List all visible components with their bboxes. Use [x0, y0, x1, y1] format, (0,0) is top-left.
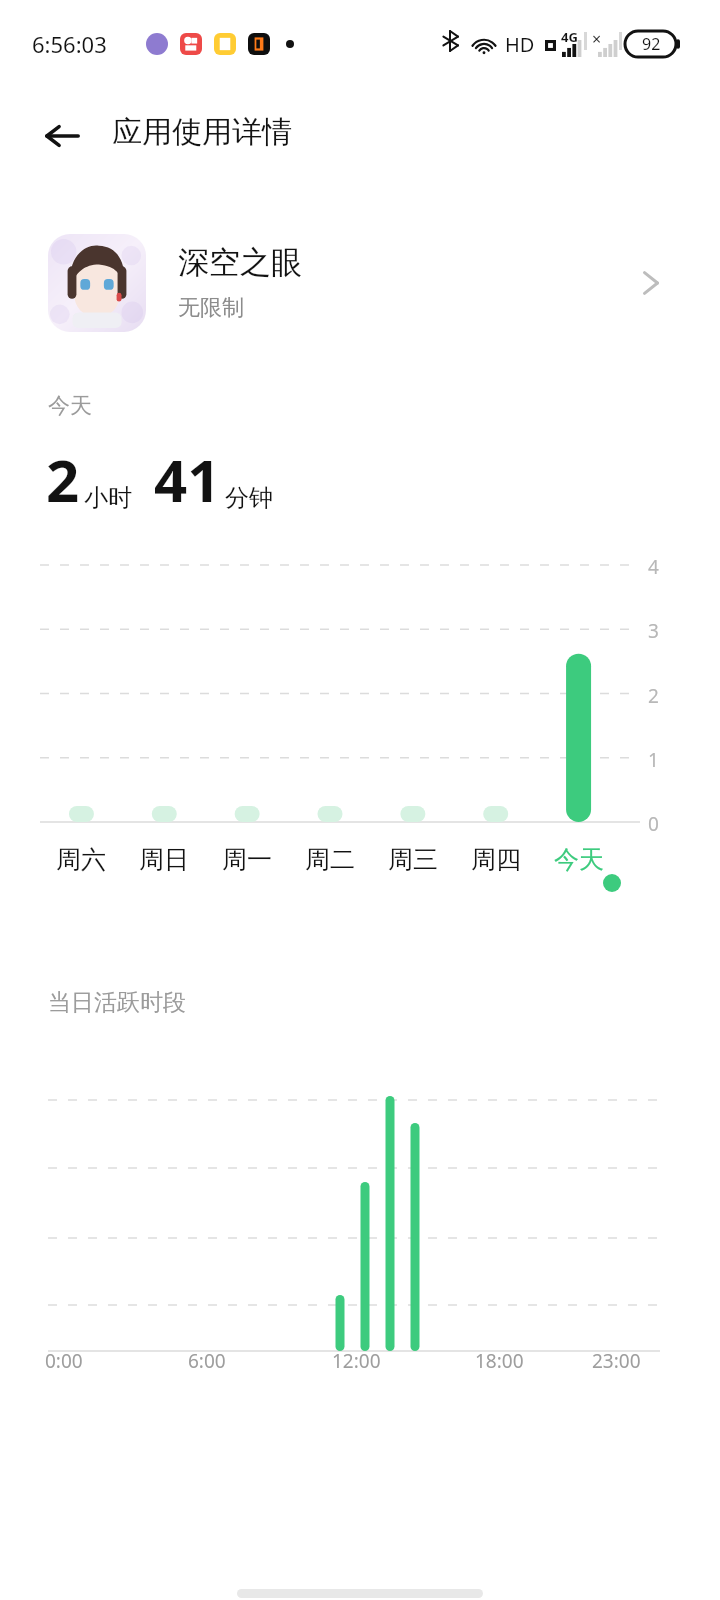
staticText: 无限制 [178, 294, 244, 322]
button[interactable]: 深空之眼 [0, 215, 720, 350]
button[interactable]: 周三 [371, 836, 454, 882]
staticText: 周四 [471, 844, 521, 875]
button[interactable]: Back [30, 104, 94, 168]
staticText: 2 [46, 440, 80, 519]
staticText: 当日活跃时段 [48, 988, 186, 1017]
staticText: HD [505, 31, 535, 58]
staticText: 今天 [554, 844, 604, 875]
staticText: × [592, 28, 602, 50]
button[interactable]: 周日 [122, 836, 205, 882]
staticText: 今天 [48, 392, 92, 420]
staticText: 6:00 [188, 1348, 226, 1374]
staticText: 周三 [388, 844, 438, 875]
staticText: 92 [642, 33, 661, 55]
staticText: 0 [648, 811, 659, 837]
staticText: 应用使用详情 [112, 113, 292, 151]
button[interactable]: 周四 [454, 836, 537, 882]
staticText: 2 [648, 683, 659, 709]
staticText: 小时 [84, 483, 132, 513]
staticText: 0:00 [45, 1348, 83, 1374]
button[interactable]: 周六 [40, 836, 122, 882]
staticText: 6:56:03 [32, 29, 107, 59]
staticText: 4G [561, 28, 578, 46]
staticText: 12:00 [332, 1348, 381, 1374]
button[interactable]: 今天 [537, 836, 620, 882]
button[interactable]: 周一 [205, 836, 288, 882]
staticText: 周六 [56, 844, 106, 875]
staticText: 23:00 [592, 1348, 641, 1374]
staticText: 1 [648, 747, 659, 773]
staticText: 深空之眼 [178, 243, 302, 282]
staticText: 周二 [305, 844, 355, 875]
staticText: 3 [648, 618, 659, 644]
staticText: 18:00 [475, 1348, 524, 1374]
staticText: 4 [648, 554, 659, 580]
staticText: 分钟 [225, 483, 273, 513]
button[interactable]: 周二 [288, 836, 371, 882]
staticText: 41 [154, 440, 221, 519]
staticText: 周一 [222, 844, 272, 875]
staticText: 周日 [139, 844, 189, 875]
